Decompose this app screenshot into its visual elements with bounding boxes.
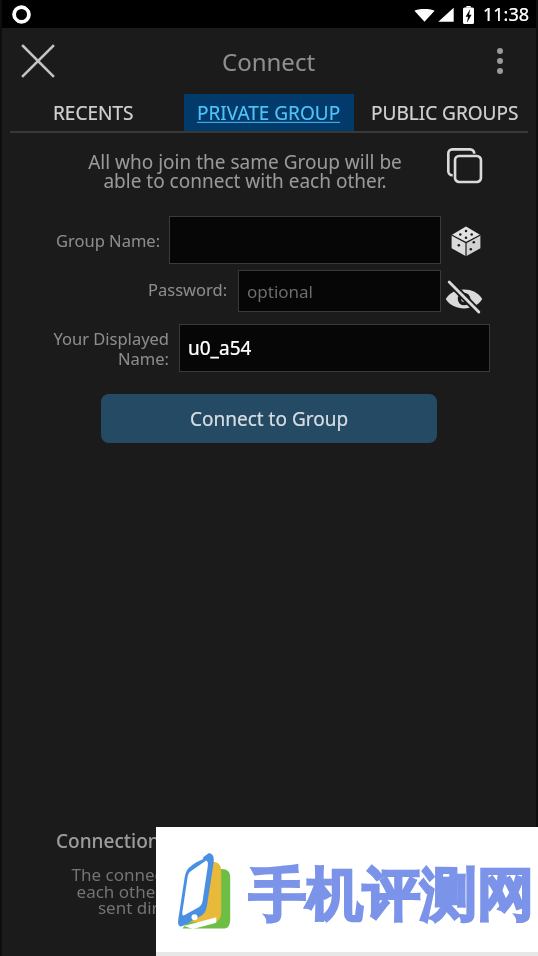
staticText: 11:38	[483, 2, 530, 27]
button[interactable]: Copy group link	[434, 138, 494, 193]
button[interactable]	[169, 216, 441, 264]
button[interactable]: u0_a54	[179, 324, 490, 372]
staticText: All who join the same Group will be able…	[41, 149, 449, 193]
button[interactable]: Connect to Group	[101, 394, 437, 443]
staticText: optional	[247, 280, 313, 303]
staticText: 手机评测网	[248, 860, 533, 932]
staticText: Group Name:	[56, 229, 161, 251]
button[interactable]: PUBLIC GROUPS	[354, 94, 536, 131]
staticText: PRIVATE GROUP	[197, 100, 341, 126]
staticText: Connect to Group	[190, 406, 349, 432]
button[interactable]: optional	[238, 270, 441, 312]
staticText: Password:	[148, 278, 228, 300]
staticText: Connection Status	[56, 828, 222, 854]
button[interactable]: More options	[476, 37, 524, 85]
button[interactable]: Show password	[440, 273, 487, 320]
staticText: The connection is direct between each ot…	[63, 863, 343, 919]
staticText: PUBLIC GROUPS	[371, 100, 519, 126]
button[interactable]: PRIVATE GROUP	[184, 94, 354, 131]
staticText: RECENTS	[53, 100, 134, 126]
staticText: Your Displayed Name:	[52, 327, 169, 370]
button[interactable]: Random name	[442, 217, 489, 264]
staticText: u0_a54	[188, 335, 252, 361]
button[interactable]: Close	[11, 34, 65, 88]
staticText: Connect	[222, 45, 316, 78]
button[interactable]: RECENTS	[2, 94, 184, 131]
